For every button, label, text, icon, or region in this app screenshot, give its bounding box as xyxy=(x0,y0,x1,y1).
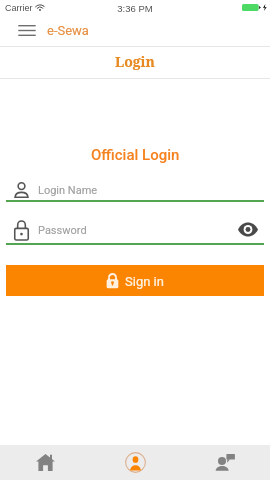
button[interactable]: Profile xyxy=(90,445,180,480)
staticText: 3:36 PM xyxy=(0,3,270,14)
staticText: Carrier xyxy=(5,3,33,13)
staticText: Login xyxy=(115,52,155,71)
button[interactable]: Support xyxy=(180,445,270,480)
button[interactable]: Home xyxy=(0,445,90,480)
staticText: Login Name xyxy=(38,184,98,197)
staticText: Sign in xyxy=(125,274,164,289)
button[interactable]: Sign in xyxy=(6,265,264,296)
staticText: Official Login xyxy=(91,146,180,163)
staticText: e-Sewa xyxy=(47,23,89,38)
button[interactable]: Login Name xyxy=(6,180,270,202)
button[interactable]: Show password xyxy=(235,217,261,241)
button[interactable]: Menu xyxy=(13,18,41,42)
staticText: Password xyxy=(38,224,87,237)
button[interactable]: Password xyxy=(6,219,270,243)
